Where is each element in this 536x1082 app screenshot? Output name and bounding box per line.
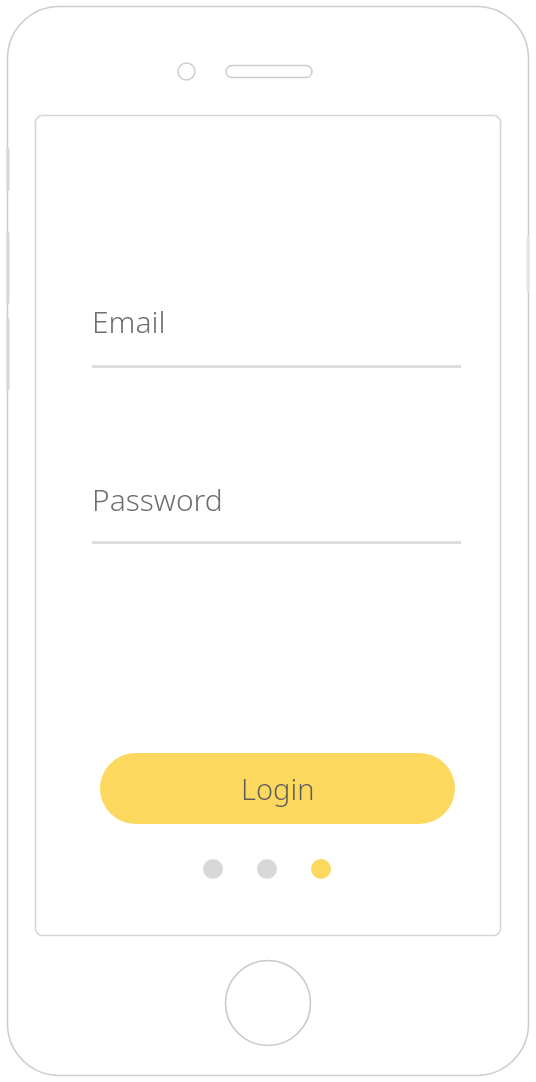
staticText: Login [241, 769, 315, 808]
button[interactable]: Email [92, 300, 461, 370]
staticText: Password [92, 479, 223, 520]
button[interactable]: Page 3, current [311, 859, 331, 879]
button[interactable]: Page 2 [257, 859, 277, 879]
staticText: Email [92, 301, 166, 342]
button[interactable]: Password [92, 478, 461, 546]
button[interactable]: Page 1 [203, 859, 223, 879]
button[interactable]: Login [100, 753, 455, 824]
button[interactable]: Home [224, 959, 312, 1047]
